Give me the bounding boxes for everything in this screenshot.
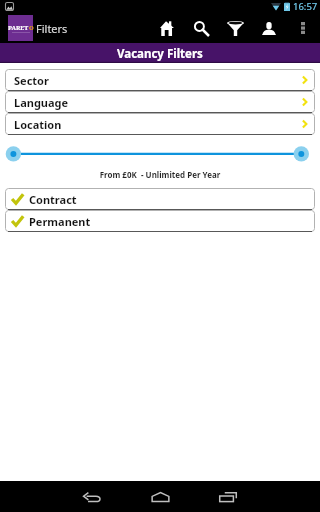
button[interactable]: More options — [286, 13, 320, 43]
staticText: Contract — [29, 192, 77, 207]
button[interactable]: Back — [58, 481, 126, 512]
staticText: Vacancy Filters — [117, 46, 203, 62]
button[interactable]: Search — [184, 13, 218, 43]
staticText: Location — [14, 117, 62, 132]
button[interactable]: Language — [5, 91, 315, 113]
button[interactable]: Home — [150, 13, 184, 43]
staticText: Language — [14, 95, 69, 110]
button[interactable]: Recents — [194, 481, 262, 512]
button[interactable]: Filter — [218, 13, 252, 43]
staticText: O — [29, 24, 33, 32]
button[interactable]: Location — [5, 113, 315, 135]
button[interactable]: Permanent — [5, 210, 315, 232]
staticText: From £0K - Unlimited Per Year — [0, 169, 320, 180]
staticText: Sector — [14, 73, 49, 88]
staticText: 16:57 — [293, 0, 318, 13]
button[interactable]: Profile — [252, 13, 286, 43]
staticText: Filters — [36, 21, 68, 36]
button[interactable]: Contract — [5, 188, 315, 210]
button[interactable]: Sector — [5, 69, 315, 91]
staticText: PARET — [8, 24, 29, 32]
button[interactable]: Home — [126, 481, 194, 512]
staticText: Permanent — [29, 214, 91, 229]
button[interactable]: Pareto logo — [8, 15, 33, 41]
